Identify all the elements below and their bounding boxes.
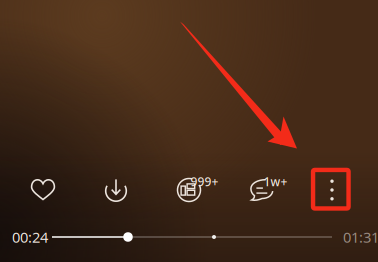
button[interactable]: Comments xyxy=(236,170,288,210)
staticText: 01:31 xyxy=(343,227,378,247)
button[interactable]: Sing along xyxy=(163,170,215,210)
staticText: 999+ xyxy=(190,173,218,189)
button[interactable]: More options xyxy=(306,170,358,210)
staticText: 00:24 xyxy=(12,227,48,247)
button[interactable]: Download xyxy=(90,170,142,210)
button[interactable]: Like xyxy=(17,170,69,210)
staticText: 1w+ xyxy=(263,173,287,189)
